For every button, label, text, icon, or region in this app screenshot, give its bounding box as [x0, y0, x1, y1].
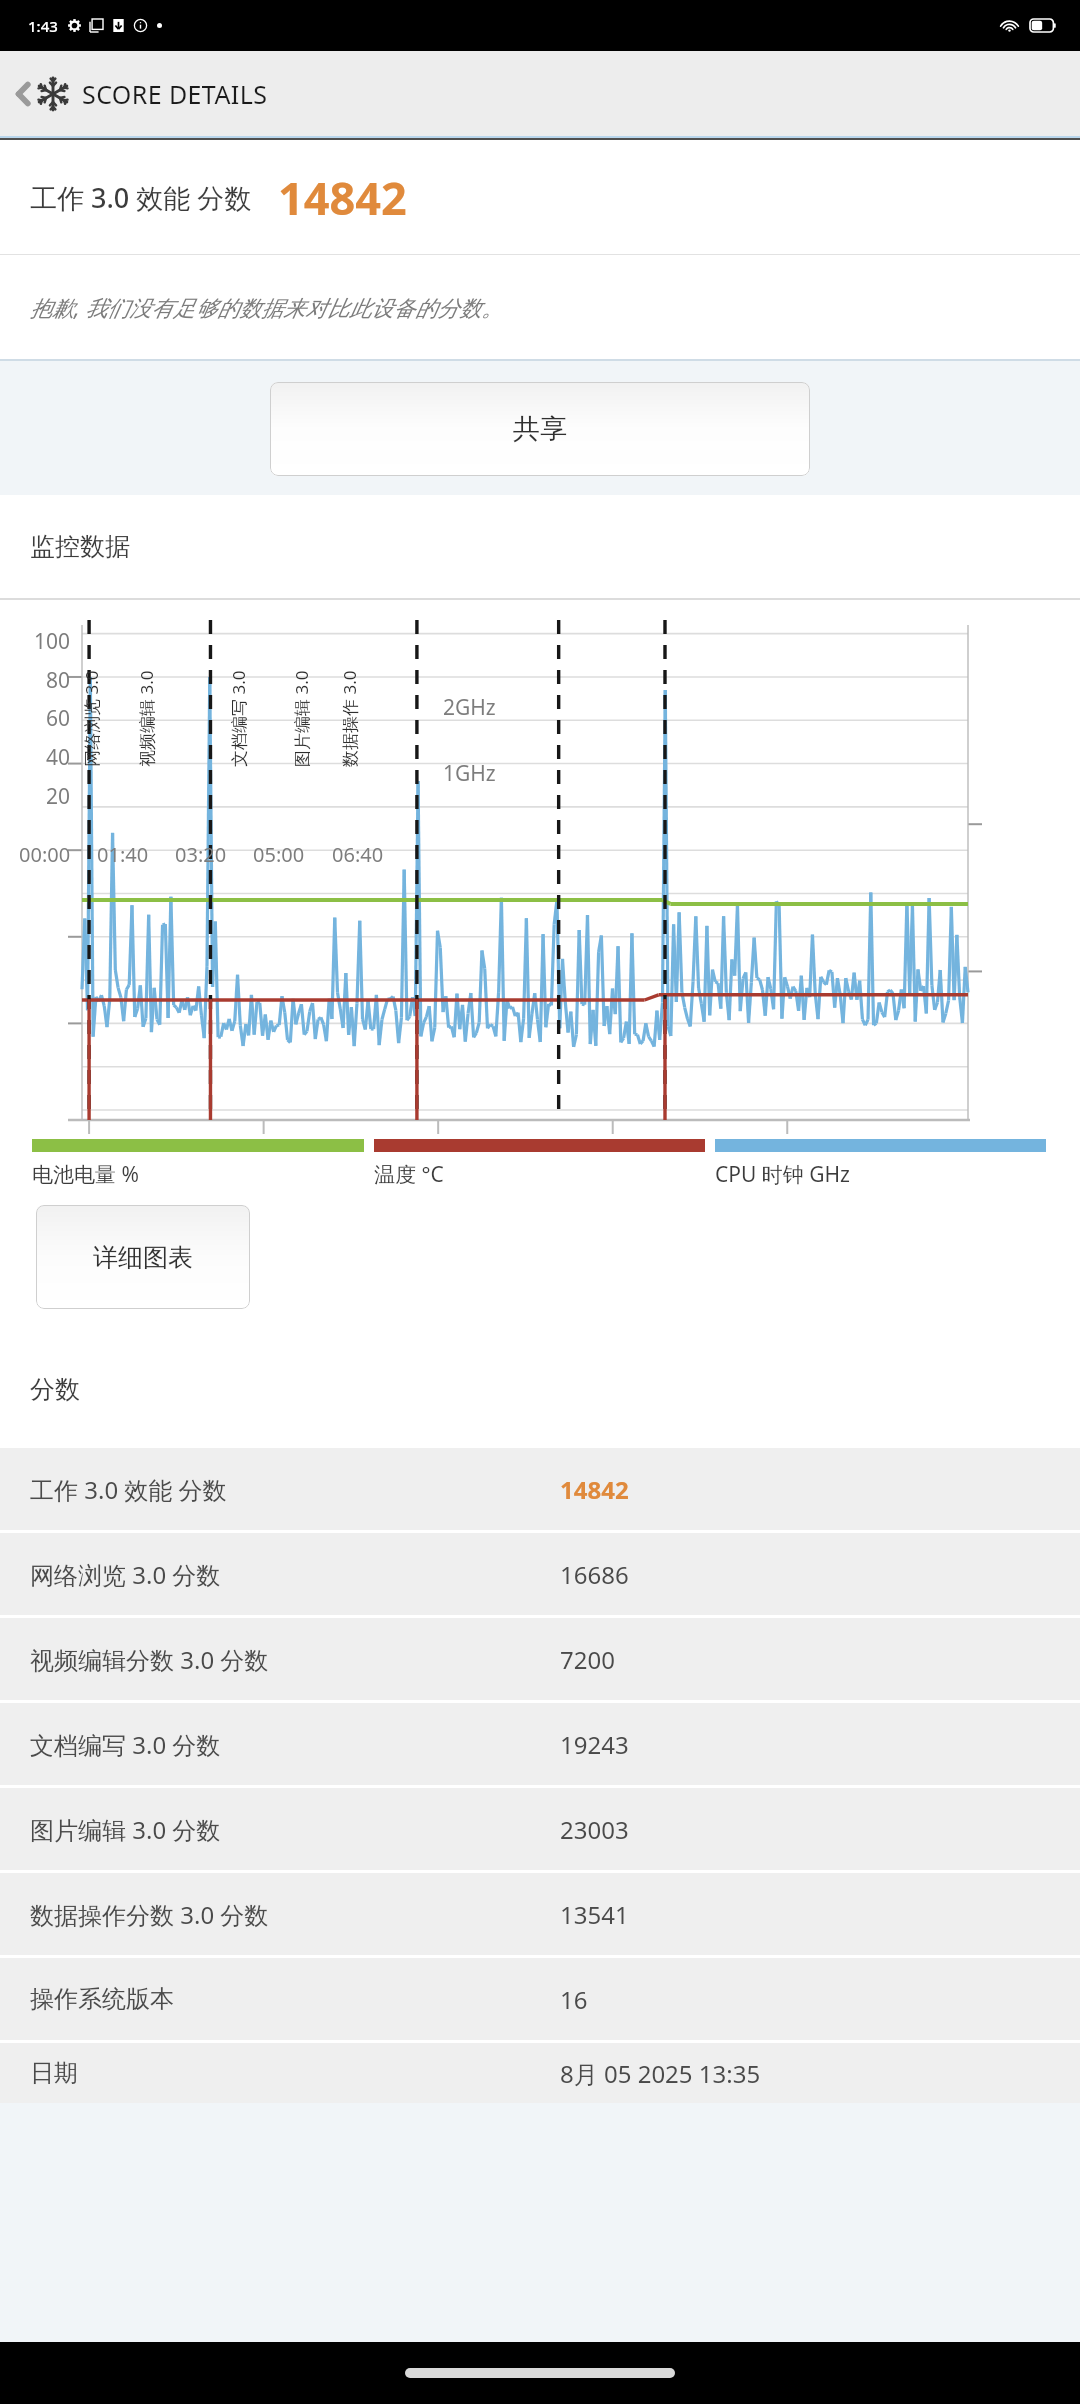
- staticText: 00:00: [19, 841, 71, 868]
- staticText: 16686: [560, 1558, 629, 1591]
- staticText: 7200: [560, 1643, 615, 1676]
- staticText: 工作 3.0 效能 分数: [30, 1473, 227, 1506]
- button[interactable]: 工作 3.0 效能 分数: [0, 1448, 1080, 1530]
- staticText: 共享: [513, 412, 567, 446]
- staticText: 01:40: [97, 841, 149, 868]
- other: Back: [12, 77, 34, 111]
- staticText: 60: [45, 704, 70, 733]
- button[interactable]: 视频编辑分数 3.0 分数: [0, 1618, 1080, 1700]
- staticText: 05:00: [253, 841, 305, 868]
- staticText: 23003: [560, 1813, 629, 1846]
- staticText: 图片编辑 3.0 分数: [30, 1813, 221, 1846]
- staticText: 温度 °C: [374, 1160, 444, 1189]
- staticText: 20: [45, 782, 70, 811]
- staticText: 工作 3.0 效能 分数: [30, 179, 252, 216]
- button[interactable]: 日期: [0, 2043, 1080, 2103]
- button[interactable]: 操作系统版本: [0, 1958, 1080, 2040]
- staticText: 操作系统版本: [30, 1984, 174, 2014]
- staticText: 16: [560, 1983, 588, 2016]
- staticText: 19243: [560, 1728, 629, 1761]
- staticText: 网络浏览 3.0: [80, 670, 103, 767]
- button[interactable]: 共享: [270, 382, 810, 476]
- staticText: 8月 05 2025 13:35: [560, 2057, 761, 2090]
- button[interactable]: 详细图表: [36, 1205, 250, 1309]
- staticText: 03:20: [175, 841, 227, 868]
- staticText: 06:40: [332, 841, 384, 868]
- staticText: 分数: [30, 1374, 80, 1405]
- staticText: 14842: [278, 167, 407, 228]
- button[interactable]: Back: [0, 51, 1080, 136]
- staticText: 14842: [560, 1473, 629, 1506]
- button[interactable]: 数据操作分数 3.0 分数: [0, 1873, 1080, 1955]
- staticText: 40: [45, 743, 70, 772]
- staticText: 1:43: [28, 16, 58, 36]
- staticText: 13541: [560, 1898, 629, 1931]
- staticText: 网络浏览 3.0 分数: [30, 1558, 221, 1591]
- staticText: 电池电量 %: [32, 1160, 139, 1189]
- staticText: 监控数据: [30, 531, 130, 562]
- staticText: 日期: [30, 2058, 78, 2088]
- staticText: 数据操作 3.0: [338, 670, 361, 767]
- staticText: 1GHz: [443, 759, 496, 788]
- staticText: 视频编辑分数 3.0 分数: [30, 1643, 269, 1676]
- staticText: 视频编辑 3.0: [135, 670, 158, 767]
- staticText: 图片编辑 3.0: [290, 670, 313, 767]
- staticText: CPU 时钟 GHz: [715, 1160, 850, 1189]
- button[interactable]: 文档编写 3.0 分数: [0, 1703, 1080, 1785]
- staticText: SCORE DETAILS: [82, 77, 268, 111]
- button[interactable]: 网络浏览 3.0 分数: [0, 1533, 1080, 1615]
- staticText: 100: [33, 627, 70, 656]
- button[interactable]: 图片编辑 3.0 分数: [0, 1788, 1080, 1870]
- staticText: 详细图表: [93, 1242, 193, 1273]
- staticText: 数据操作分数 3.0 分数: [30, 1898, 269, 1931]
- staticText: 80: [45, 666, 70, 695]
- staticText: 文档编写 3.0 分数: [30, 1728, 221, 1761]
- staticText: 抱歉, 我们没有足够的数据来对比此设备的分数。: [30, 292, 504, 322]
- staticText: 文档编写 3.0: [227, 670, 250, 767]
- staticText: 2GHz: [443, 693, 496, 722]
